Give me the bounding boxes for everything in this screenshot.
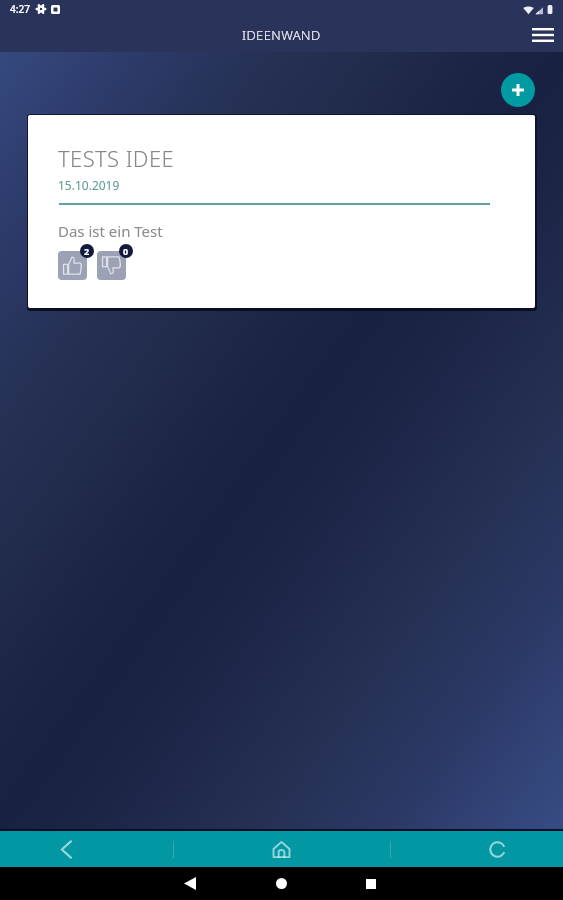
staticText: 15.10.2019	[58, 177, 120, 193]
button[interactable]: Home	[263, 831, 299, 867]
button[interactable]: Dislike	[97, 251, 126, 280]
button[interactable]: Recent apps	[359, 867, 383, 900]
staticText: IDEENWAND	[242, 26, 321, 44]
button[interactable]: Back	[48, 831, 84, 867]
button[interactable]: Back	[178, 867, 202, 900]
button[interactable]: Home	[269, 867, 293, 900]
staticText: TESTS IDEE	[58, 143, 175, 173]
staticText: Das ist ein Test	[58, 221, 163, 241]
staticText: 4:27	[10, 2, 30, 16]
button[interactable]: Add idea	[501, 73, 535, 107]
staticText: 0	[123, 245, 129, 257]
button[interactable]: Refresh	[479, 831, 515, 867]
button[interactable]: Menu	[526, 18, 560, 52]
staticText: 2	[84, 245, 90, 257]
button[interactable]: Like	[58, 251, 87, 280]
button[interactable]: TESTS IDEE	[28, 115, 535, 308]
